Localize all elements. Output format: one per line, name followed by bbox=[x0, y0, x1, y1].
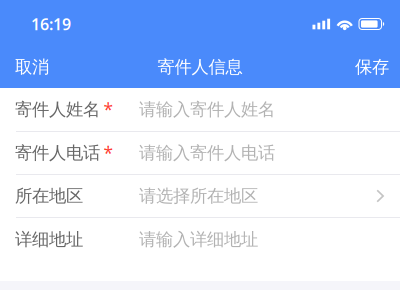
staticText: 请输入寄件人电话 bbox=[139, 142, 275, 164]
staticText: 寄件人信息 bbox=[157, 56, 242, 78]
staticText: * bbox=[103, 98, 113, 121]
staticText: * bbox=[103, 141, 113, 164]
button[interactable]: 取消 bbox=[0, 44, 63, 88]
staticText: 保存 bbox=[355, 56, 389, 78]
button[interactable]: 保存 bbox=[341, 44, 400, 88]
button[interactable]: 寄件人姓名 bbox=[0, 88, 400, 131]
staticText: 寄件人姓名 bbox=[15, 99, 100, 120]
button[interactable]: 寄件人电话 bbox=[0, 132, 400, 174]
staticText: 16:19 bbox=[31, 13, 71, 35]
staticText: 请输入寄件人姓名 bbox=[139, 99, 275, 120]
staticText: 请选择所在地区 bbox=[139, 185, 258, 207]
staticText: 所在地区 bbox=[15, 185, 83, 207]
staticText: 寄件人电话 bbox=[15, 142, 100, 164]
button[interactable]: 详细地址 bbox=[0, 218, 400, 261]
staticText: 取消 bbox=[15, 56, 49, 78]
staticText: 详细地址 bbox=[15, 229, 83, 250]
staticText: 请输入详细地址 bbox=[139, 229, 258, 250]
button[interactable]: 所在地区 bbox=[0, 175, 400, 217]
